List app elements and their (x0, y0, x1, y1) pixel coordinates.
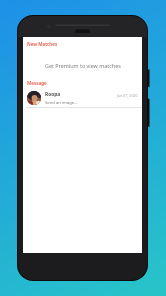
staticText: Message (27, 80, 47, 86)
staticText: New Matches (27, 41, 58, 47)
staticText: Roopa (45, 91, 61, 98)
staticText: Get Premium to view matches (45, 62, 121, 69)
other: Roopa profile photo (27, 91, 41, 105)
staticText: Jun 07, 2020 (117, 93, 138, 98)
button[interactable]: Get Premium to view matches (23, 58, 142, 72)
button[interactable]: Roopa profile photo (23, 89, 142, 107)
staticText: Send an image... (45, 100, 78, 106)
